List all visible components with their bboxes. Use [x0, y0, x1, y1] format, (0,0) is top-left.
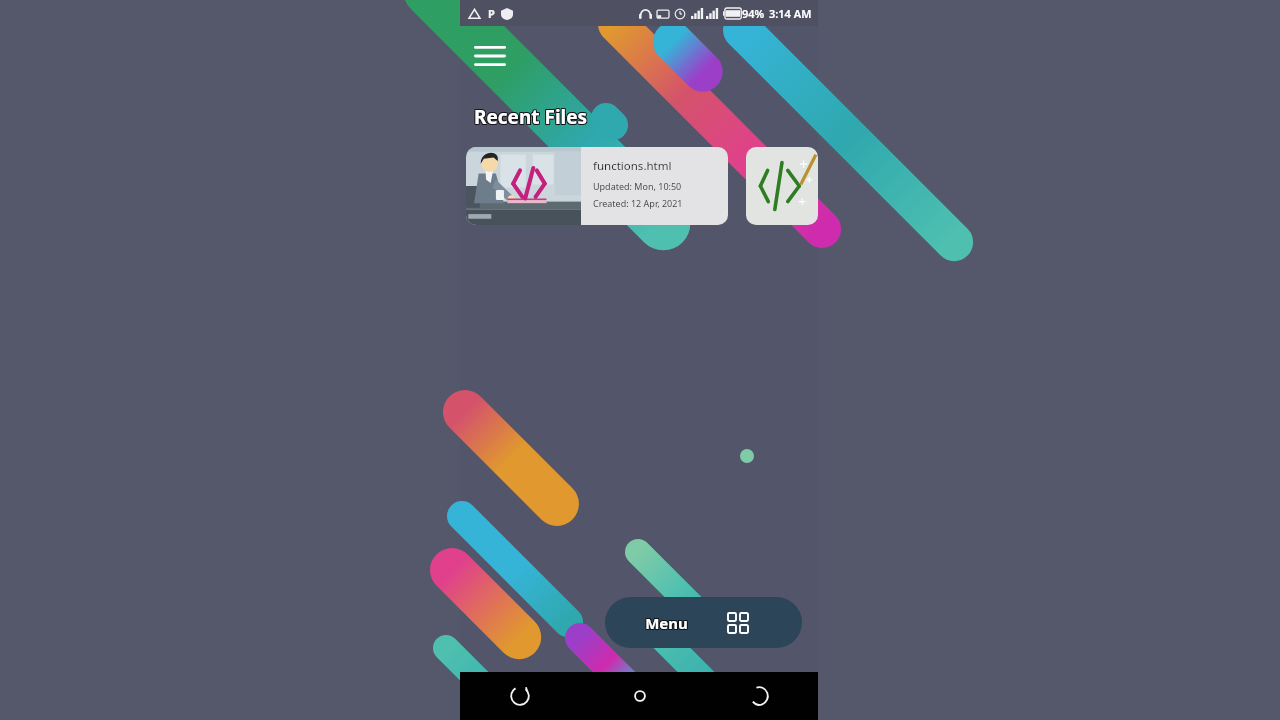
- staticText: Menu: [646, 613, 689, 633]
- staticText: Recent Files: [475, 103, 589, 129]
- staticText: Menu: [645, 613, 688, 633]
- button[interactable]: functions.html: [466, 147, 728, 225]
- staticText: Recent Files: [474, 105, 588, 131]
- staticText: Created: 12 Apr, 2021: [593, 197, 683, 209]
- button[interactable]: Back: [699, 672, 818, 720]
- staticText: Menu: [646, 612, 689, 632]
- staticText: Menu: [644, 614, 687, 634]
- staticText: functions.html: [593, 158, 672, 174]
- staticText: Recent Files: [474, 104, 588, 130]
- staticText: Updated: Mon, 10:50: [593, 180, 682, 192]
- staticText: Menu: [645, 612, 688, 632]
- button[interactable]: Menu: [605, 597, 802, 648]
- button[interactable]: Open navigation menu: [468, 38, 512, 74]
- staticText: P: [488, 6, 495, 21]
- staticText: Menu: [644, 613, 687, 633]
- staticText: Menu: [646, 614, 689, 634]
- staticText: 94%: [742, 6, 765, 21]
- staticText: Recent Files: [474, 103, 588, 129]
- button[interactable]: index.html: [746, 147, 818, 225]
- staticText: Recent Files: [475, 105, 589, 131]
- staticText: Recent Files: [473, 104, 587, 130]
- staticText: Menu: [644, 612, 687, 632]
- staticText: Recent Files: [473, 105, 587, 131]
- button[interactable]: Home: [580, 672, 699, 720]
- staticText: Menu: [645, 614, 688, 634]
- staticText: 3:14 AM: [769, 6, 812, 21]
- staticText: Recent Files: [475, 104, 589, 130]
- staticText: Recent Files: [473, 103, 587, 129]
- button[interactable]: Recent apps: [460, 672, 580, 720]
